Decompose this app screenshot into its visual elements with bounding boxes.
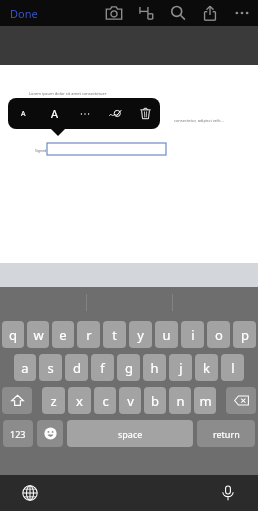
staticText: d [73,359,81,377]
button[interactable] [47,143,166,155]
button[interactable]: r [77,321,100,348]
button[interactable]: d [65,354,88,381]
staticText: s [47,359,54,377]
staticText: e [59,326,67,344]
button[interactable]: t [103,321,126,348]
staticText: j [179,359,183,377]
button[interactable]: l [221,354,244,381]
button[interactable]: j [169,354,192,381]
staticText: g [125,359,133,377]
staticText: return [213,428,240,440]
button[interactable]: y [129,321,152,348]
button[interactable]: i [181,321,204,348]
staticText: m [199,392,212,410]
staticText: t [112,326,117,344]
staticText: c [102,392,109,410]
button[interactable]: p [233,321,256,348]
staticText: h [150,359,159,377]
button[interactable]: Camera [102,1,126,25]
button[interactable]: Change keyboard [18,481,42,505]
staticText: y [137,326,144,344]
button[interactable]: b [144,387,166,414]
button[interactable]: Share [198,1,222,25]
staticText: 123 [10,428,26,440]
button[interactable]: Dictate [216,481,240,505]
button[interactable]: x [68,387,91,414]
button[interactable]: Backspace [226,387,256,414]
button[interactable]: z [42,387,65,414]
staticText: A [51,106,59,121]
staticText: Signed [35,148,47,153]
staticText: Done [10,6,38,21]
button[interactable]: m [194,387,216,414]
button[interactable]: Markup [134,1,158,25]
button[interactable]: h [143,354,166,381]
staticText: q [9,326,17,344]
staticText: r [86,326,92,344]
button[interactable]: Numbers [3,420,33,447]
staticText: space [118,428,143,440]
button[interactable]: return [197,420,255,447]
button[interactable]: Small text [8,98,39,129]
button[interactable]: g [117,354,140,381]
staticText: u [162,326,171,344]
button[interactable]: a [14,354,36,381]
staticText: v [127,392,134,410]
button[interactable]: c [94,387,116,414]
button[interactable]: space [67,420,193,447]
staticText: z [50,392,57,410]
button[interactable]: More options [230,1,254,25]
button[interactable]: e [52,321,74,348]
button[interactable]: o [207,321,230,348]
button[interactable]: u [155,321,178,348]
button[interactable]: w [27,321,49,348]
button[interactable]: n [169,387,191,414]
button[interactable]: k [195,354,218,381]
button[interactable]: Signature [100,98,130,129]
staticText: i [191,326,195,344]
button[interactable]: Search [166,1,190,25]
button[interactable]: Done [0,2,48,25]
button[interactable]: Large text [39,98,70,129]
staticText: o [215,326,223,344]
staticText: consectetur, adipisci velit... [174,118,224,123]
staticText: w [33,326,44,344]
staticText: a [21,359,29,377]
staticText: b [151,392,159,410]
button[interactable]: q [2,321,24,348]
staticText: l [231,359,235,377]
button[interactable]: s [39,354,62,381]
button[interactable]: Delete [130,98,160,129]
staticText: A [21,109,26,119]
button[interactable]: More [70,98,100,129]
staticText: k [203,359,210,377]
button[interactable]: Shift [2,387,32,414]
staticText: p [241,326,249,344]
button[interactable]: v [119,387,141,414]
button[interactable]: f [91,354,114,381]
button[interactable]: Emoji [37,420,63,447]
staticText: x [76,392,83,410]
staticText: Lorem ipsum dolor sit amet consectetuer [29,91,107,96]
staticText: f [100,359,105,377]
staticText: n [176,392,185,410]
